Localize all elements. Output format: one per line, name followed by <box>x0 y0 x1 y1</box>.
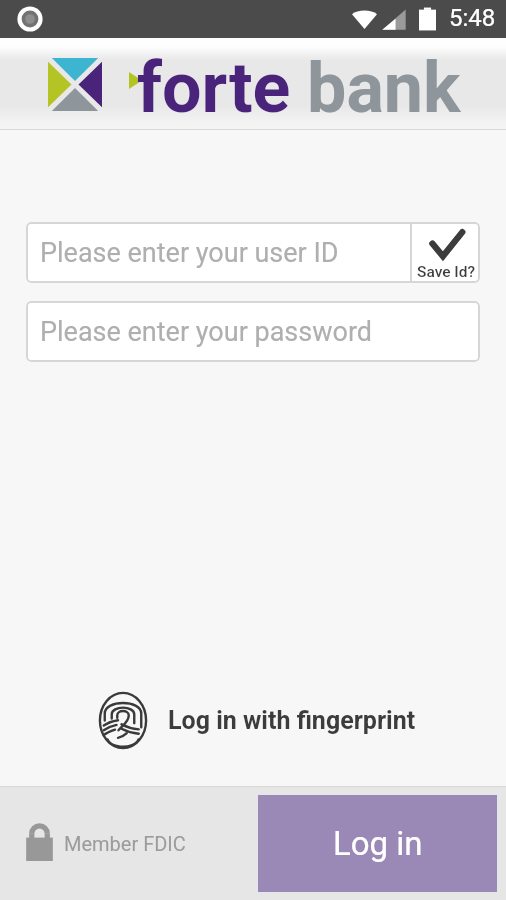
staticText: Save Id? <box>417 263 476 281</box>
button[interactable]: Member FDIC <box>24 824 186 863</box>
staticText: Log in <box>333 824 423 863</box>
button[interactable]: Save Id <box>412 222 480 283</box>
staticText: Please enter your password <box>40 316 373 348</box>
button[interactable]: Log in <box>258 795 497 892</box>
button[interactable]: Please enter your user ID <box>26 222 410 283</box>
staticText: Please enter your user ID <box>40 237 339 269</box>
button[interactable]: Log in with fingerprint <box>0 691 506 750</box>
staticText: Log in with fingerprint <box>168 706 416 735</box>
staticText: 5:48 <box>449 4 496 32</box>
staticText: bank <box>307 47 461 129</box>
staticText: forte <box>137 47 291 129</box>
button[interactable]: Please enter your password <box>26 301 480 362</box>
staticText: Member FDIC <box>64 832 186 855</box>
